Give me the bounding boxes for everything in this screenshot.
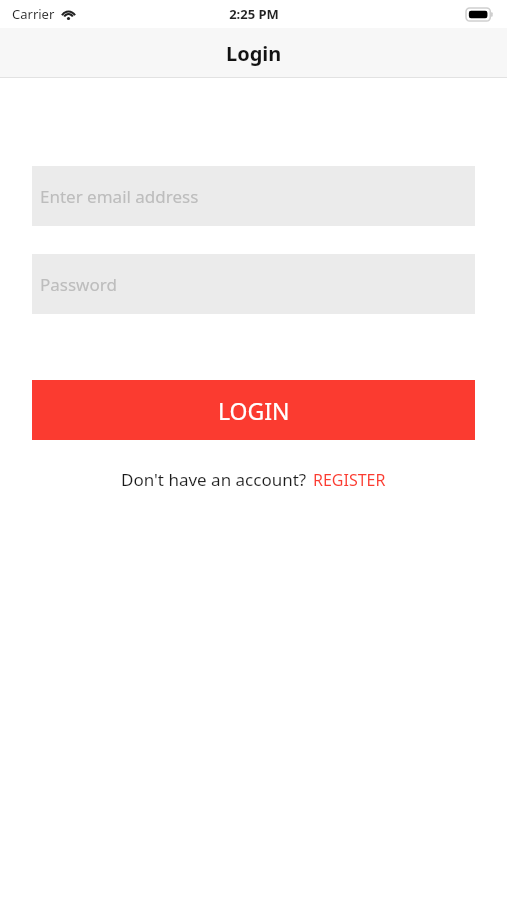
button[interactable]: Enter email address: [32, 166, 475, 226]
staticText: Enter email address: [40, 185, 199, 208]
staticText: Login: [226, 40, 282, 67]
staticText: Password: [40, 273, 117, 296]
staticText: 2:25 PM: [229, 5, 279, 23]
staticText: LOGIN: [218, 395, 290, 426]
button[interactable]: LOGIN: [32, 380, 475, 440]
staticText: REGISTER: [313, 469, 386, 491]
button[interactable]: Password: [32, 254, 475, 314]
staticText: Carrier: [12, 5, 55, 23]
button[interactable]: REGISTER: [313, 469, 386, 491]
staticText: Don't have an account?: [121, 468, 307, 491]
other: Battery full: [466, 8, 493, 21]
other: Wi-Fi signal: [61, 8, 76, 20]
